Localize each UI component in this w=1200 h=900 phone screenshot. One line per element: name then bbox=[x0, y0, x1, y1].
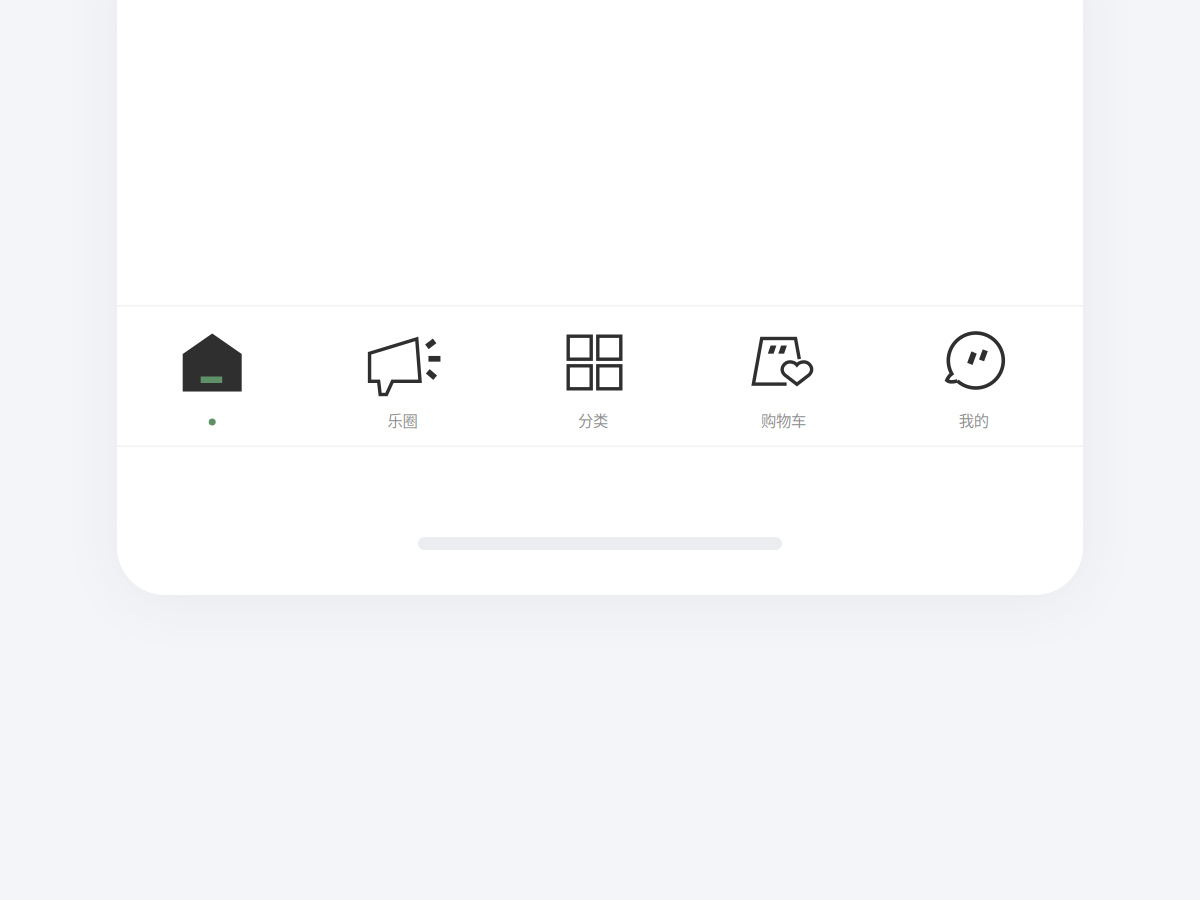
staticText: 购物车 bbox=[761, 408, 806, 431]
button[interactable]: 购物车 bbox=[688, 306, 879, 445]
button[interactable]: 分类 bbox=[498, 306, 688, 445]
button[interactable]: 乐圈 bbox=[307, 306, 498, 445]
staticText: 分类 bbox=[578, 408, 608, 431]
button[interactable]: 我的 bbox=[879, 306, 1069, 445]
button[interactable]: 首页 bbox=[117, 306, 307, 445]
staticText: 乐圈 bbox=[388, 408, 418, 431]
staticText: 我的 bbox=[959, 408, 989, 431]
